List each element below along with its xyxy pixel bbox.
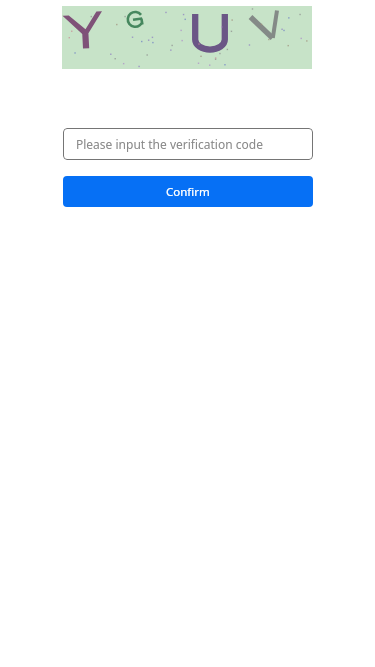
staticText: Confirm xyxy=(166,184,210,200)
button[interactable]: Verification code image, tap to refresh xyxy=(62,6,312,69)
button[interactable]: Confirm xyxy=(63,176,313,207)
staticText: Please input the verification code xyxy=(76,136,263,152)
button[interactable]: Please input the verification code xyxy=(63,128,313,160)
